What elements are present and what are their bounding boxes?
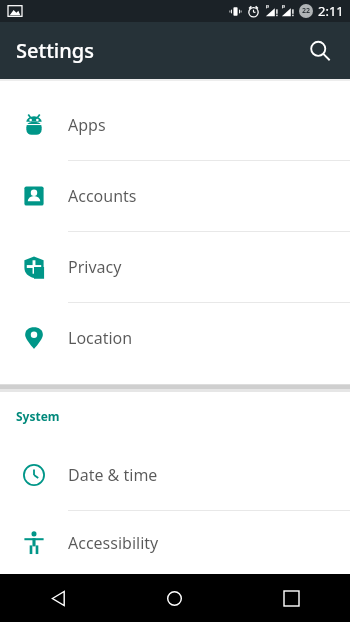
staticText: Accessibility (68, 532, 159, 554)
button[interactable]: Privacy (0, 232, 350, 303)
staticText: Apps (68, 114, 106, 136)
staticText: Accounts (68, 185, 137, 207)
button[interactable]: Location (0, 303, 350, 373)
staticText: 22 (302, 6, 311, 16)
button[interactable]: Home (116, 574, 233, 622)
staticText: System (16, 408, 60, 424)
staticText: Date & time (68, 464, 158, 486)
button[interactable]: Accounts (0, 161, 350, 232)
staticText: Privacy (68, 256, 122, 278)
button[interactable]: Accessibility (0, 511, 350, 574)
button[interactable]: Recent apps (233, 574, 350, 622)
button[interactable]: Apps (0, 90, 350, 161)
button[interactable]: Search (298, 29, 342, 73)
button[interactable]: Back (0, 574, 116, 622)
staticText: Settings (16, 37, 94, 64)
staticText: 2:11 (318, 2, 344, 20)
staticText: Location (68, 327, 133, 349)
button[interactable]: Date & time (0, 440, 350, 511)
